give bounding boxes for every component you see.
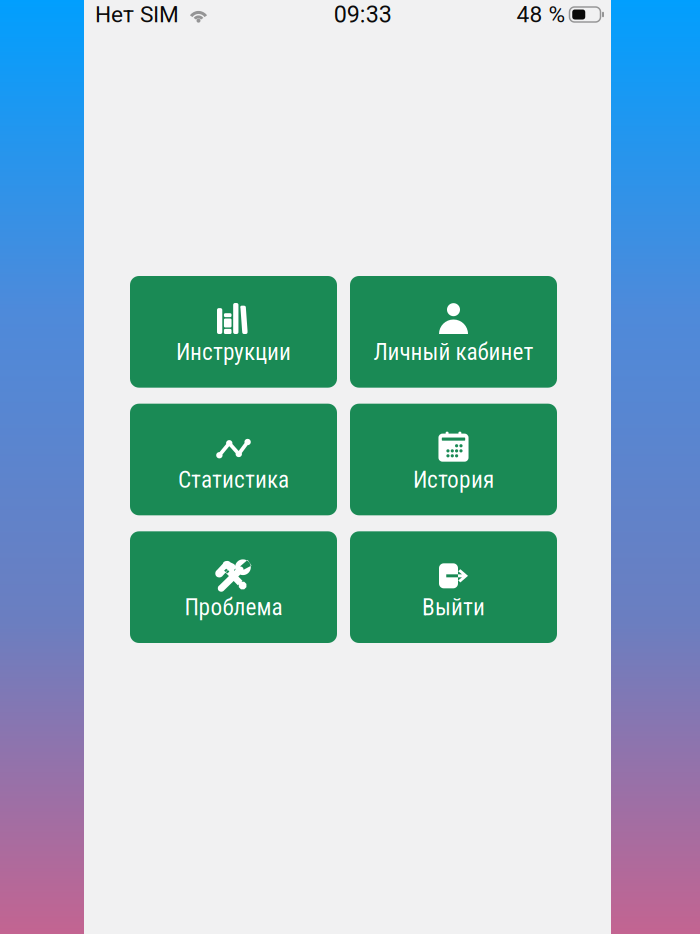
staticText: 48 % (516, 1, 565, 28)
staticText: Проблема (184, 594, 282, 621)
button[interactable]: Инструкции (130, 276, 337, 388)
staticText: Нет SIM (95, 1, 179, 28)
button[interactable]: История (350, 404, 557, 515)
button[interactable]: Статистика (130, 404, 337, 515)
staticText: Выйти (422, 594, 485, 621)
button[interactable]: Выйти (350, 531, 557, 643)
button[interactable]: Проблема (130, 531, 337, 643)
staticText: 09:33 (334, 1, 392, 28)
staticText: Инструкции (176, 338, 291, 366)
button[interactable]: Личный кабинет (350, 276, 557, 388)
staticText: Личный кабинет (373, 338, 533, 366)
staticText: История (413, 466, 494, 493)
staticText: Статистика (178, 466, 289, 493)
